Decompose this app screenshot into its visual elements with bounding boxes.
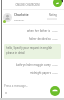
button[interactable]: midnight papers xyxy=(3,71,58,75)
button[interactable]: kathryn hahn maggie carey xyxy=(3,63,58,67)
staticText: 12:49 xyxy=(52,72,58,75)
button[interactable]: Rating xyxy=(44,13,57,20)
staticText: 12:48 xyxy=(52,64,58,67)
staticText: Charlotte xyxy=(14,13,29,17)
staticText: hello, Specify your request in english xyxy=(6,46,53,50)
staticText: Rating xyxy=(49,13,57,17)
staticText: midnight papers xyxy=(30,71,51,75)
button[interactable]: father decided so xyxy=(3,37,58,41)
staticText: when her father is xyxy=(27,29,51,33)
staticText: 12:46 xyxy=(52,38,58,41)
button[interactable]: Attach xyxy=(4,91,8,95)
button[interactable]: Send xyxy=(50,86,60,96)
staticText: 12:45 xyxy=(52,30,58,33)
button[interactable]: ONLINE CHATROOM xyxy=(3,1,52,8)
staticText: please in detail xyxy=(6,51,25,55)
staticText: ONLINE CHATROOM xyxy=(15,3,40,6)
staticText: kathryn hahn maggie carey xyxy=(16,63,51,67)
button[interactable]: when her father is xyxy=(3,29,58,33)
button[interactable]: hello, Specify your request in english xyxy=(4,44,61,59)
staticText: Press a message... xyxy=(4,84,29,88)
button[interactable]: Charlotte xyxy=(14,13,29,21)
button[interactable]: Call xyxy=(53,0,62,7)
staticText: father decided so xyxy=(29,37,51,41)
staticText: Designer xyxy=(14,18,25,21)
